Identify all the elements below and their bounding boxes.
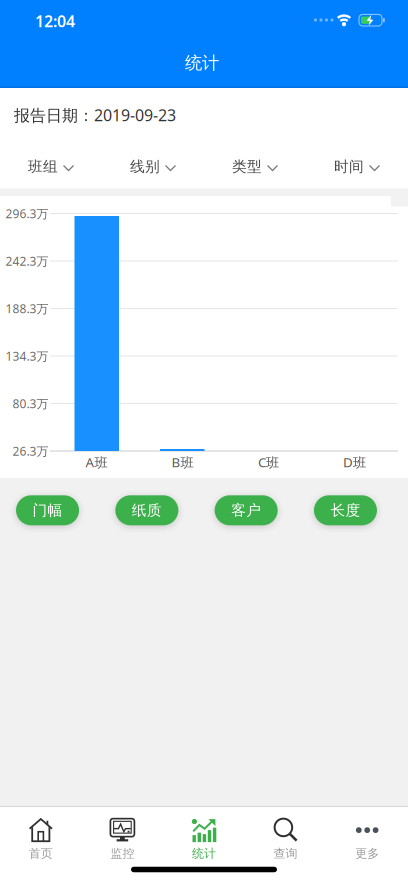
staticText: 统计 <box>192 846 216 861</box>
button[interactable]: 门幅 <box>16 495 79 525</box>
staticText: 242.3万 <box>5 253 48 269</box>
staticText: 监控 <box>110 846 134 861</box>
staticText: 26.3万 <box>12 443 48 459</box>
staticText: 门幅 <box>33 501 63 519</box>
staticText: 类型 <box>232 157 262 175</box>
button[interactable]: 时间 <box>334 157 380 175</box>
staticText: 12:04 <box>35 10 75 32</box>
staticText: 班组 <box>28 157 58 175</box>
staticText: 80.3万 <box>12 395 48 411</box>
staticText: B班 <box>171 453 193 471</box>
button[interactable]: 线别 <box>130 157 176 175</box>
button[interactable]: 长度 <box>314 495 377 525</box>
staticText: 更多 <box>355 846 379 861</box>
button[interactable]: 客户 <box>215 495 278 525</box>
staticText: 统计 <box>185 52 219 74</box>
staticText: 188.3万 <box>5 300 48 316</box>
button[interactable]: 统计 <box>163 816 245 862</box>
button[interactable]: 监控 <box>82 816 163 862</box>
staticText: 纸质 <box>132 501 162 519</box>
staticText: 线别 <box>130 157 160 175</box>
button[interactable]: 查询 <box>245 816 326 862</box>
staticText: A班 <box>85 453 107 471</box>
staticText: C班 <box>258 453 279 471</box>
button[interactable]: 班组 <box>28 157 74 175</box>
staticText: 时间 <box>334 157 364 175</box>
button[interactable]: 纸质 <box>115 495 178 525</box>
button[interactable]: 类型 <box>232 157 278 175</box>
button[interactable]: 更多 <box>326 816 408 862</box>
staticText: 长度 <box>330 501 360 519</box>
staticText: 客户 <box>231 501 261 519</box>
button[interactable]: 首页 <box>0 816 82 862</box>
staticText: D班 <box>343 453 366 471</box>
staticText: 296.3万 <box>5 205 48 221</box>
staticText: 134.3万 <box>5 348 48 364</box>
staticText: 报告日期：2019-09-23 <box>14 104 176 126</box>
staticText: 首页 <box>29 846 53 861</box>
staticText: 查询 <box>274 846 298 861</box>
